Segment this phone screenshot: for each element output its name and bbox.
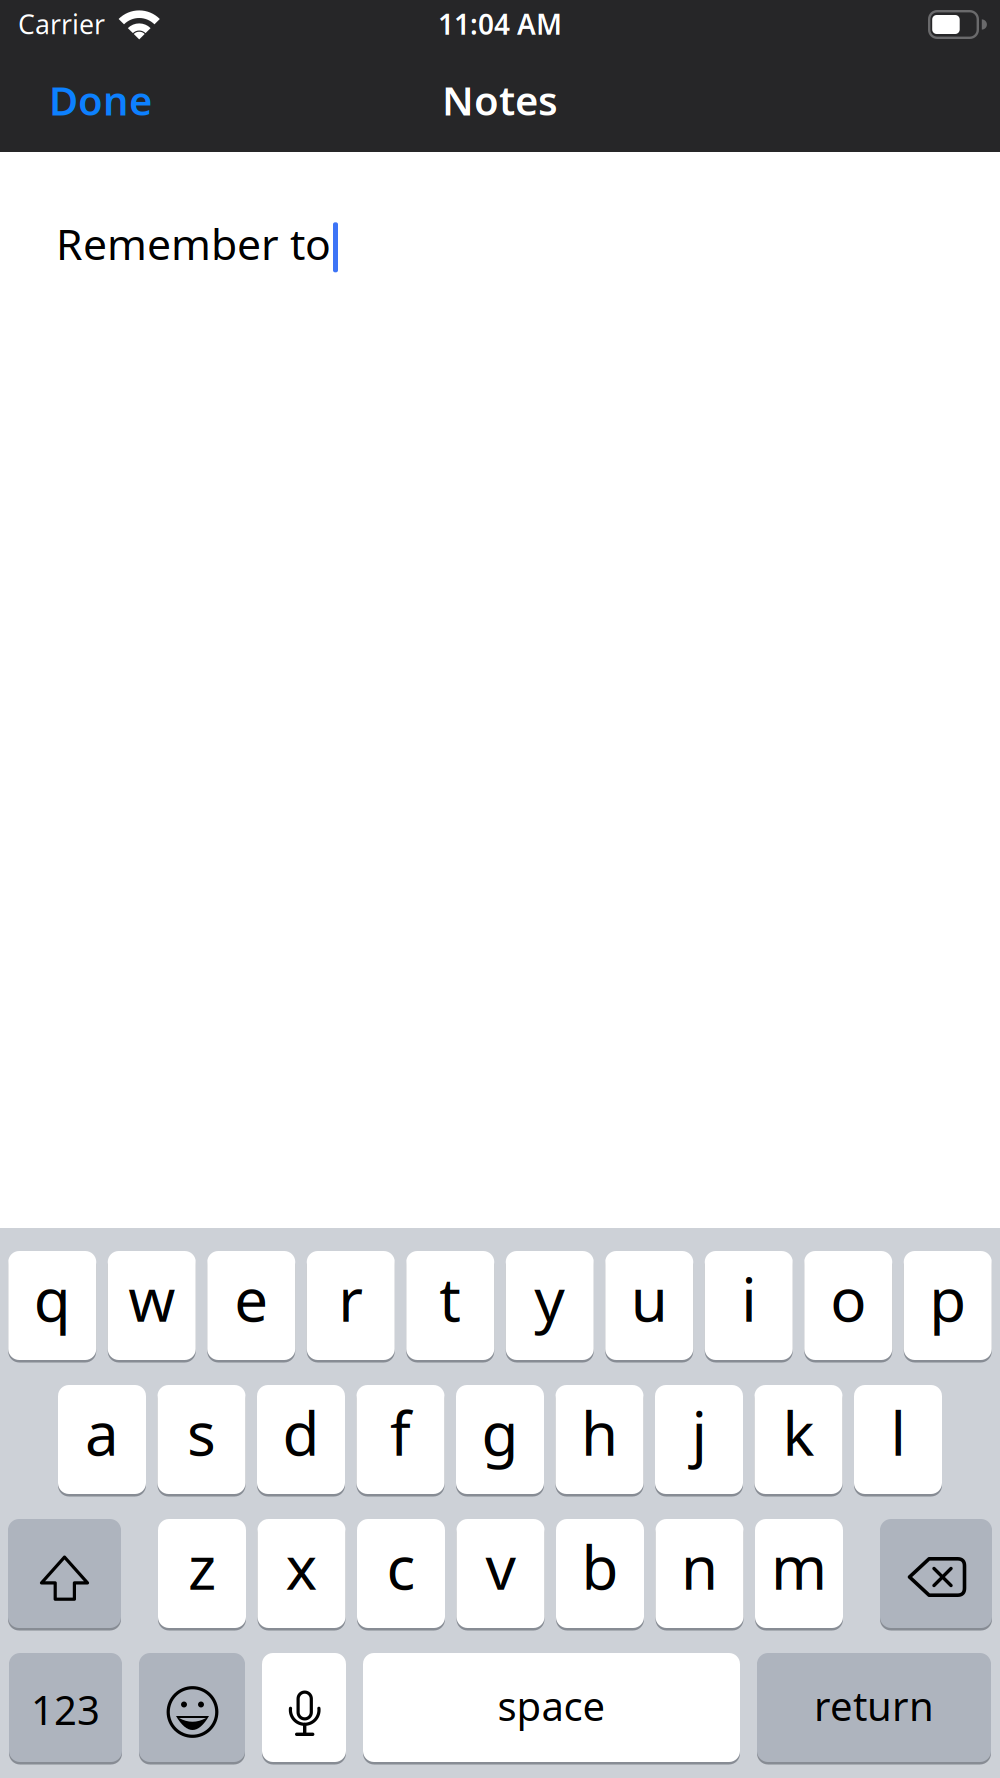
button[interactable]: return: [757, 1653, 991, 1762]
button[interactable]: Done: [49, 73, 152, 126]
staticText: r: [338, 1259, 363, 1338]
staticText: s: [187, 1393, 216, 1472]
staticText: c: [386, 1527, 415, 1606]
staticText: k: [782, 1393, 814, 1472]
button[interactable]: d: [257, 1385, 345, 1494]
button[interactable]: a: [58, 1385, 146, 1494]
staticText: Remember to: [56, 215, 331, 272]
button[interactable]: space: [363, 1653, 740, 1762]
staticText: 123: [31, 1683, 100, 1736]
staticText: Done: [49, 73, 152, 126]
button[interactable]: s: [157, 1385, 245, 1494]
staticText: f: [390, 1393, 411, 1472]
button[interactable]: j: [655, 1385, 743, 1494]
staticText: 11:04 AM: [438, 5, 562, 43]
staticText: d: [282, 1393, 319, 1472]
button[interactable]: Dictate: [262, 1653, 346, 1762]
staticText: g: [481, 1393, 518, 1472]
staticText: l: [890, 1393, 905, 1472]
button[interactable]: e: [207, 1251, 295, 1360]
staticText: i: [741, 1259, 756, 1338]
button[interactable]: h: [555, 1385, 643, 1494]
staticText: m: [771, 1527, 827, 1606]
button[interactable]: v: [456, 1519, 544, 1628]
staticText: h: [581, 1393, 618, 1472]
staticText: space: [497, 1679, 605, 1732]
button[interactable]: l: [854, 1385, 942, 1494]
button[interactable]: 123: [9, 1653, 122, 1762]
staticText: v: [485, 1527, 515, 1606]
button[interactable]: Shift: [8, 1519, 121, 1628]
staticText: n: [681, 1527, 718, 1606]
button[interactable]: y: [506, 1251, 594, 1360]
staticText: a: [85, 1393, 119, 1472]
button[interactable]: n: [655, 1519, 743, 1628]
staticText: t: [439, 1259, 461, 1338]
button[interactable]: u: [605, 1251, 693, 1360]
button[interactable]: q: [8, 1251, 96, 1360]
button[interactable]: b: [556, 1519, 644, 1628]
staticText: o: [830, 1259, 866, 1338]
staticText: j: [691, 1393, 706, 1472]
button[interactable]: i: [705, 1251, 793, 1360]
button[interactable]: x: [257, 1519, 345, 1628]
button[interactable]: f: [356, 1385, 444, 1494]
staticText: w: [128, 1259, 175, 1338]
button[interactable]: c: [357, 1519, 445, 1628]
staticText: p: [929, 1259, 966, 1338]
staticText: Notes: [442, 73, 558, 126]
button[interactable]: k: [754, 1385, 842, 1494]
button[interactable]: p: [904, 1251, 992, 1360]
staticText: z: [188, 1527, 216, 1606]
staticText: b: [581, 1527, 618, 1606]
button[interactable]: t: [406, 1251, 494, 1360]
button[interactable]: r: [307, 1251, 395, 1360]
button[interactable]: Delete: [880, 1519, 992, 1628]
staticText: e: [234, 1259, 268, 1338]
button[interactable]: g: [456, 1385, 544, 1494]
staticText: y: [534, 1259, 565, 1338]
button[interactable]: Emoji: [139, 1653, 245, 1762]
button[interactable]: o: [804, 1251, 892, 1360]
staticText: Carrier: [18, 6, 105, 42]
button[interactable]: m: [755, 1519, 843, 1628]
button[interactable]: z: [158, 1519, 246, 1628]
staticText: u: [631, 1259, 668, 1338]
staticText: q: [34, 1259, 71, 1338]
button[interactable]: w: [108, 1251, 196, 1360]
staticText: x: [285, 1527, 317, 1606]
staticText: return: [814, 1679, 934, 1732]
